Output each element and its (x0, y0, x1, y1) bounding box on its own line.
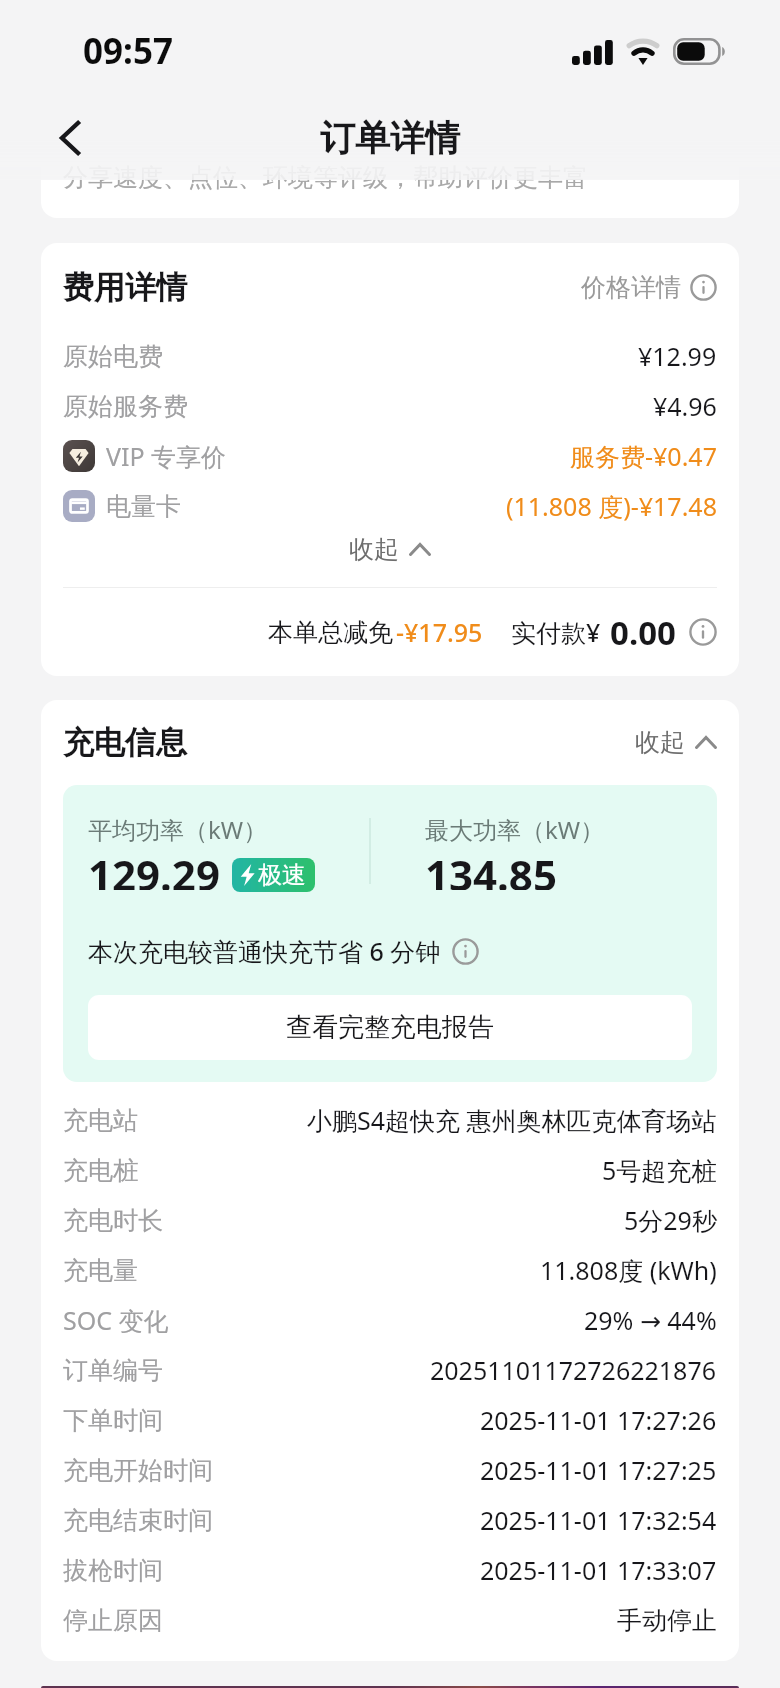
staticText: 0.00 (610, 610, 676, 655)
staticText: 收起 (635, 727, 685, 758)
button[interactable]: 查看完整充电报告 (88, 995, 692, 1060)
button[interactable]: Back (38, 106, 102, 170)
staticText: 本单总减免 (268, 617, 393, 648)
staticText: 极速 (258, 860, 306, 890)
staticText: 129.29 (88, 846, 220, 890)
staticText: 原始服务费 (63, 391, 188, 422)
staticText: 手动停止 (617, 1605, 717, 1636)
staticText: 小鹏S4超快充 惠州奥林匹克体育场站 (307, 1103, 717, 1137)
staticText: 订单详情 (320, 116, 460, 160)
staticText: 费用详情 (63, 268, 187, 307)
staticText: 充电时长 (63, 1205, 163, 1236)
staticText: 2025-11-01 17:32:54 (480, 1503, 717, 1537)
staticText: 实付款¥ (511, 615, 601, 649)
button[interactable]: 价格详情 (581, 272, 717, 303)
staticText: 最大功率（kW） (425, 813, 605, 846)
staticText: 充电信息 (63, 723, 187, 762)
staticText: 充电结束时间 (63, 1505, 213, 1536)
staticText: ¥12.99 (638, 339, 717, 373)
staticText: 停止原因 (63, 1605, 163, 1636)
staticText: -¥17.95 (396, 615, 483, 649)
staticText: 134.85 (425, 846, 557, 890)
button[interactable]: 收起 (41, 531, 739, 567)
staticText: 充电桩 (63, 1155, 138, 1186)
staticText: 原始电费 (63, 341, 163, 372)
staticText: 分享速度、点位、环境等评级，帮助评价更丰富 (63, 162, 588, 193)
staticText: 20251101172726221876 (430, 1353, 717, 1387)
staticText: 充电量 (63, 1255, 138, 1286)
staticText: 2025-11-01 17:27:26 (480, 1403, 717, 1437)
staticText: 2025-11-01 17:33:07 (480, 1553, 717, 1587)
staticText: 5号超充桩 (602, 1153, 717, 1187)
staticText: 本次充电较普通快充节省 6 分钟 (88, 934, 441, 968)
staticText: SOC 变化 (63, 1303, 169, 1337)
staticText: 09:57 (83, 27, 173, 75)
staticText: 充电站 (63, 1105, 138, 1136)
staticText: 电量卡 (106, 491, 181, 522)
staticText: 5分29秒 (624, 1203, 717, 1237)
staticText: 查看完整充电报告 (286, 1011, 494, 1044)
staticText: 价格详情 (581, 272, 681, 303)
staticText: 订单编号 (63, 1355, 163, 1386)
staticText: 拔枪时间 (63, 1555, 163, 1586)
staticText: (11.808 度)-¥17.48 (506, 489, 717, 523)
staticText: ¥4.96 (653, 389, 717, 423)
staticText: VIP 专享价 (106, 439, 227, 473)
button[interactable]: 收起 (635, 727, 717, 758)
staticText: 收起 (349, 534, 399, 565)
staticText: 充电开始时间 (63, 1455, 213, 1486)
staticText: 服务费-¥0.47 (570, 439, 717, 473)
staticText: 29% → 44% (584, 1303, 717, 1337)
staticText: 平均功率（kW） (88, 813, 268, 846)
staticText: 2025-11-01 17:27:25 (480, 1453, 717, 1487)
staticText: 11.808度 (kWh) (540, 1253, 717, 1287)
staticText: 下单时间 (63, 1405, 163, 1436)
